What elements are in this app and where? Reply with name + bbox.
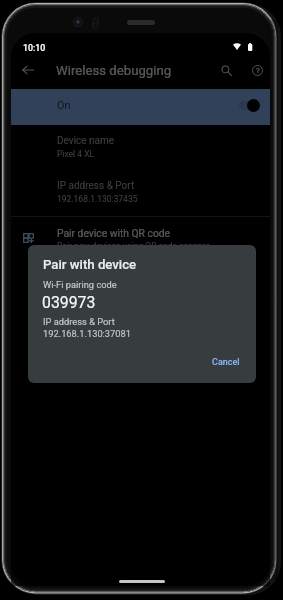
button[interactable] — [11, 89, 270, 125]
staticText: Device name — [57, 135, 115, 147]
staticText: Wi-Fi pairing code — [43, 279, 117, 290]
button[interactable] — [11, 124, 270, 169]
staticText: Pair device with QR code — [57, 227, 171, 239]
staticText: 192.168.1.130:37435 — [57, 194, 138, 204]
button[interactable]: Search — [213, 57, 239, 83]
staticText: IP address & Port — [43, 316, 115, 327]
staticText: Wireless debugging — [56, 63, 172, 78]
button[interactable]: Cancel — [206, 351, 246, 374]
staticText: Cancel — [212, 357, 240, 368]
button[interactable]: Help — [244, 57, 270, 83]
staticText: IP address & Port — [57, 180, 135, 192]
staticText: Pair new devices using QR code scanner — [57, 241, 210, 251]
staticText: 192.168.1.130:37081 — [43, 328, 131, 339]
button[interactable]: Navigate up — [15, 57, 41, 83]
button[interactable] — [11, 169, 270, 214]
button[interactable] — [11, 217, 270, 262]
staticText: 039973 — [42, 293, 96, 312]
staticText: Pair with device — [43, 257, 137, 272]
staticText: Pixel 4 XL — [57, 149, 95, 159]
staticText: 10:10 — [23, 43, 46, 53]
staticText: On — [57, 99, 71, 112]
staticText: ? — [256, 66, 260, 75]
